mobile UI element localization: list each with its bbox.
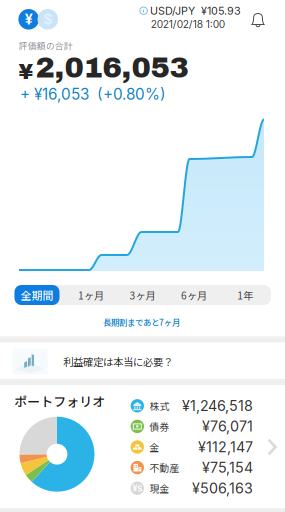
button[interactable]: ¥s (131, 478, 253, 498)
button[interactable]: 全期間 (14, 285, 59, 305)
button[interactable]: 1年 (220, 285, 271, 305)
button[interactable]: Notifications (246, 8, 270, 32)
staticText: ¥112,147 (198, 438, 253, 456)
staticText: ポートフォリオ (14, 391, 105, 410)
staticText: 2,016,053 (36, 52, 189, 84)
staticText: 長期割まであと7ヶ月 (103, 316, 180, 328)
staticText: 3ヶ月 (129, 288, 155, 302)
staticText: ¥1,246,518 (182, 397, 253, 414)
button[interactable]: 株式 (131, 395, 253, 416)
button[interactable]: 3ヶ月 (117, 285, 168, 305)
staticText: 2021/02/18 1:00 (151, 18, 225, 30)
staticText: 評価額の合計 (19, 39, 73, 52)
button[interactable]: 金 (131, 437, 253, 457)
staticText: 債券 (150, 419, 170, 433)
button[interactable]: 債券 (131, 416, 253, 437)
button[interactable]: 利益確定は本当に必要？ (13, 343, 272, 379)
staticText: 現金 (150, 481, 170, 495)
staticText: 不動産 (150, 460, 180, 475)
staticText: 金 (150, 440, 160, 454)
staticText: ¥506,163 (192, 480, 253, 497)
staticText: 利益確定は本当に必要？ (63, 354, 173, 369)
staticText: (+0.80%) (97, 85, 166, 103)
staticText: ¥76,071 (202, 418, 253, 435)
staticText: ¥ (25, 11, 33, 28)
staticText: 1年 (237, 288, 253, 302)
button[interactable]: 1ヶ月 (65, 285, 117, 305)
staticText: USD/JPY ¥105.93 (150, 4, 241, 17)
staticText: 1ヶ月 (78, 288, 104, 302)
staticText: + ¥16,053 (20, 85, 89, 103)
staticText: $ (43, 11, 52, 28)
staticText: ¥ (19, 60, 34, 84)
button[interactable]: USD/JPY ¥105.93 (134, 4, 246, 17)
staticText: 全期間 (20, 287, 53, 303)
button[interactable]: 長期割まであと7ヶ月 (89, 315, 193, 329)
button[interactable]: 表示通貨 (18, 9, 58, 30)
button[interactable]: 不動産 (131, 457, 253, 478)
staticText: 株式 (150, 399, 170, 413)
staticText: 6ヶ月 (181, 288, 207, 302)
button[interactable]: 6ヶ月 (168, 285, 220, 305)
staticText: ¥s (132, 483, 142, 494)
button[interactable]: ポートフォリオの詳細 (264, 435, 280, 459)
staticText: ¥75,154 (202, 459, 253, 476)
